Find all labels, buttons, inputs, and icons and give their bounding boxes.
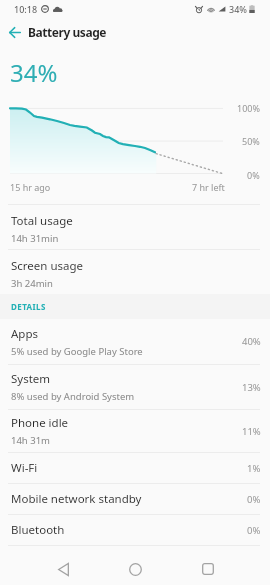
staticText: 1% xyxy=(247,462,261,475)
button[interactable]: System xyxy=(0,365,270,409)
staticText: Bluetooth xyxy=(11,522,65,538)
button[interactable]: Recent apps xyxy=(191,552,225,585)
button[interactable]: Back xyxy=(0,20,29,47)
staticText: 7 hr left xyxy=(192,181,225,193)
button[interactable]: Apps xyxy=(0,319,270,364)
staticText: 8% used by Android System xyxy=(11,390,135,403)
button[interactable]: Back xyxy=(46,552,80,585)
button[interactable]: Total usage xyxy=(0,205,270,249)
button[interactable]: Home xyxy=(118,552,152,585)
staticText: 11% xyxy=(242,425,261,438)
button[interactable]: Screen usage xyxy=(0,250,270,294)
staticText: Total usage xyxy=(11,213,73,229)
staticText: 13% xyxy=(242,381,261,394)
button[interactable]: Phone idle xyxy=(0,410,270,452)
staticText: 100% xyxy=(237,102,260,114)
staticText: 5% used by Google Play Store xyxy=(11,345,143,358)
staticText: 15 hr ago xyxy=(10,181,51,193)
button[interactable]: Bluetooth xyxy=(0,515,270,545)
staticText: Phone idle xyxy=(11,415,69,431)
button[interactable]: Mobile network standby xyxy=(0,484,270,514)
staticText: 40% xyxy=(242,335,261,348)
button[interactable]: Wi-Fi xyxy=(0,453,270,483)
staticText: 34% xyxy=(229,3,247,15)
staticText: 0% xyxy=(247,493,261,506)
staticText: Mobile network standby xyxy=(11,491,142,507)
staticText: 3h 24min xyxy=(11,277,53,290)
staticText: 0% xyxy=(247,524,261,537)
staticText: Battery usage xyxy=(28,24,106,40)
staticText: 10:18 xyxy=(14,3,38,15)
staticText: Wi-Fi xyxy=(11,460,38,476)
staticText: Screen usage xyxy=(11,258,84,274)
staticText: DETAILS xyxy=(11,301,46,312)
staticText: 34% xyxy=(10,56,58,89)
staticText: 14h 31min xyxy=(11,232,59,245)
staticText: 50% xyxy=(242,135,260,147)
staticText: 14h 31m xyxy=(11,434,50,447)
staticText: System xyxy=(11,371,51,387)
staticText: 0% xyxy=(247,169,260,181)
staticText: Apps xyxy=(11,326,39,342)
